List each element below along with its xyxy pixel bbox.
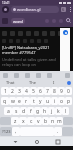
button[interactable]: .	[54, 127, 62, 136]
staticText: 12:41	[2, 1, 10, 5]
button[interactable]: The	[21, 79, 43, 86]
button[interactable]: z	[11, 117, 19, 125]
staticText: t	[33, 98, 35, 105]
button[interactable]: Keyboard tool	[36, 73, 41, 78]
button[interactable]: n	[49, 117, 56, 125]
button[interactable]: x	[19, 117, 27, 125]
button[interactable]: Search	[66, 18, 71, 23]
button[interactable]: Recents	[52, 137, 64, 146]
button[interactable]: 1	[1, 87, 9, 95]
staticText: 4	[25, 88, 28, 95]
button[interactable]: Profile	[2, 6, 9, 13]
button[interactable]: c	[27, 117, 35, 125]
button[interactable]: word	[13, 18, 23, 24]
button[interactable]	[60, 28, 70, 71]
staticText: 6	[62, 7, 65, 12]
staticText: o	[60, 98, 64, 105]
button[interactable]: ?123	[0, 127, 12, 136]
button[interactable]: I	[43, 79, 65, 86]
button[interactable]: That	[0, 79, 21, 86]
button[interactable]: ,	[12, 127, 20, 136]
button[interactable]: m	[56, 117, 63, 125]
button[interactable]: 0	[65, 87, 72, 95]
staticText: b	[44, 118, 48, 125]
button[interactable]: h	[41, 107, 48, 115]
staticText: j	[51, 108, 53, 115]
button[interactable]: Voice input	[65, 79, 73, 86]
button[interactable]: k	[55, 107, 62, 115]
button[interactable]: i	[51, 97, 58, 105]
button[interactable]: Keyboard tool	[3, 73, 8, 78]
button[interactable]: v	[35, 117, 42, 125]
staticText: That	[6, 80, 15, 85]
button[interactable]: Messages	[52, 19, 56, 23]
staticText: e	[18, 98, 21, 105]
staticText: m	[57, 118, 62, 125]
button[interactable]: 3	[16, 87, 23, 95]
button[interactable]: b	[42, 117, 49, 125]
button[interactable]: 2	[9, 87, 16, 95]
button[interactable]: p	[65, 97, 72, 105]
staticText: a	[7, 108, 10, 115]
staticText: q	[3, 98, 7, 105]
button[interactable]: r	[23, 97, 30, 105]
button[interactable]: o	[58, 97, 65, 105]
staticText: ,	[15, 128, 17, 135]
button[interactable]: l	[62, 107, 69, 115]
button[interactable]: e	[16, 97, 23, 105]
button[interactable]: Tabs	[61, 7, 66, 12]
button[interactable]: Back	[9, 137, 21, 146]
staticText: 8	[53, 88, 56, 95]
button[interactable]: j	[48, 107, 55, 115]
staticText: 9	[60, 88, 63, 95]
staticText: w	[11, 98, 15, 105]
button[interactable]: d	[20, 107, 27, 115]
button[interactable]: 8	[51, 87, 58, 95]
button[interactable]: 6	[37, 87, 44, 95]
button[interactable]: Account	[59, 19, 63, 23]
button[interactable]: Keyboard tool	[25, 73, 30, 78]
button[interactable]: Settings	[65, 73, 70, 78]
button[interactable]: s	[12, 107, 20, 115]
button[interactable]: Keyboard tool	[14, 73, 19, 78]
button[interactable]: 4	[23, 87, 30, 95]
button[interactable]: a	[4, 107, 12, 115]
button[interactable]: u	[44, 97, 51, 105]
staticText: ?123	[2, 129, 11, 134]
button[interactable]: g	[34, 107, 41, 115]
button[interactable]: q	[1, 97, 9, 105]
button[interactable]: 9	[58, 87, 65, 95]
button[interactable]: 7	[44, 87, 51, 95]
button[interactable]: More options	[68, 6, 72, 13]
button[interactable]: Notifications	[45, 19, 49, 23]
button[interactable]: 5	[30, 87, 37, 95]
button[interactable]: f	[27, 107, 34, 115]
staticText: i	[54, 98, 56, 105]
button[interactable]: Keyboard tool	[47, 73, 52, 78]
button[interactable]: t	[30, 97, 37, 105]
button[interactable]: Action	[58, 31, 63, 36]
button[interactable]: y	[37, 97, 44, 105]
button[interactable]: wordbean.gl	[11, 6, 59, 13]
button[interactable]: w	[9, 97, 16, 105]
button[interactable]: Home	[31, 137, 43, 146]
